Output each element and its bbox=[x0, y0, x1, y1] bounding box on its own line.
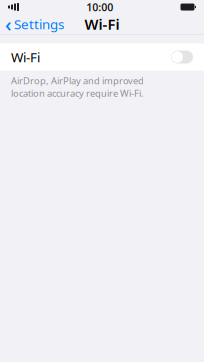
staticText: ‹ bbox=[5, 11, 12, 37]
staticText: Settings bbox=[14, 15, 64, 33]
staticText: 10:00 bbox=[86, 0, 113, 14]
staticText: AirDrop, AirPlay and improved location a… bbox=[11, 74, 144, 99]
button[interactable]: ‹ bbox=[0, 8, 64, 40]
button[interactable]: Wi-Fi bbox=[0, 43, 204, 70]
staticText: Wi-Fi bbox=[84, 14, 119, 34]
staticText: Wi-Fi bbox=[11, 48, 40, 66]
